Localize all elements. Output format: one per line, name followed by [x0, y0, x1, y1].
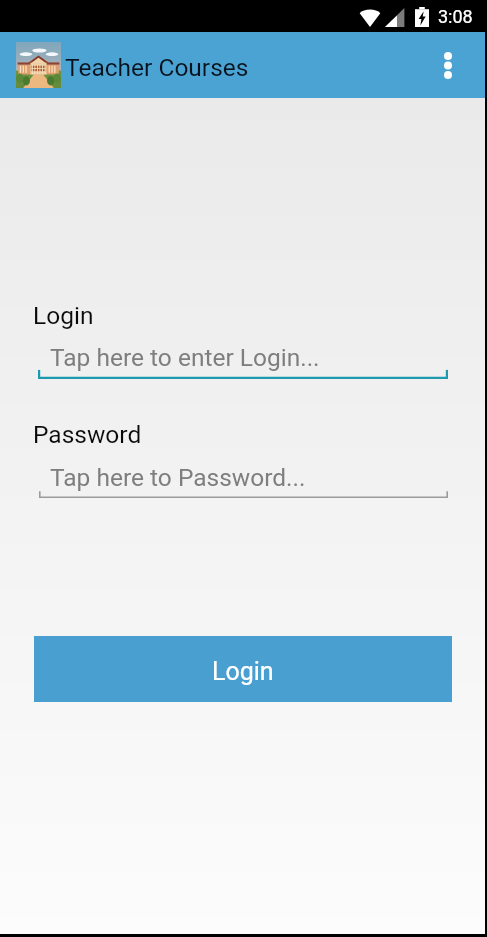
button[interactable]: More options [424, 32, 472, 98]
button[interactable]: Login input field [38, 335, 448, 379]
staticText: Tap here to Password... [50, 463, 306, 492]
button[interactable]: Password input field [39, 455, 448, 498]
staticText: 3:08 [438, 6, 473, 27]
staticText: Password [33, 420, 142, 449]
staticText: Teacher Courses [65, 53, 249, 82]
staticText: Login [33, 301, 94, 330]
staticText: Login [212, 657, 274, 686]
staticText: Tap here to enter Login... [50, 343, 320, 372]
button[interactable]: Login [34, 636, 452, 702]
